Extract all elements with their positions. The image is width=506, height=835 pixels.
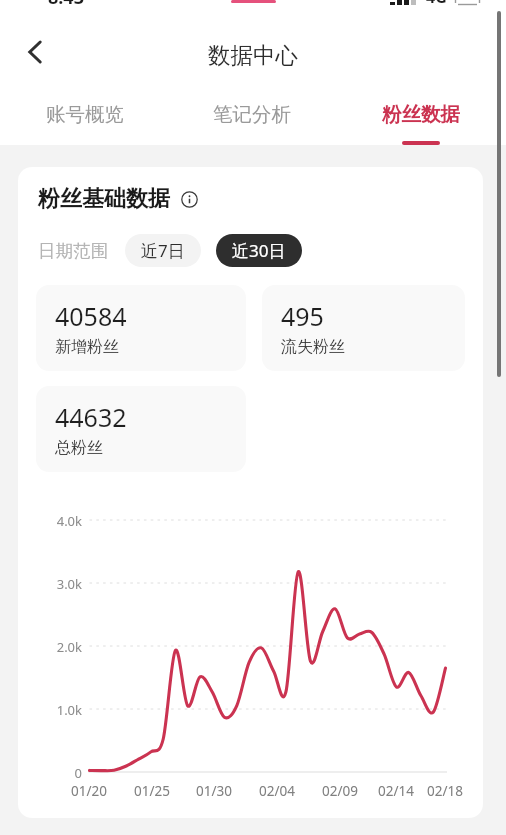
staticText: 02/18 bbox=[420, 782, 470, 800]
staticText: 笔记分析 bbox=[213, 102, 291, 127]
staticText: 4.0k bbox=[32, 512, 82, 530]
staticText: 账号概览 bbox=[46, 102, 124, 127]
staticText: 新增粉丝 bbox=[55, 337, 119, 357]
staticText: 01/20 bbox=[64, 782, 114, 800]
staticText: 粉丝基础数据 bbox=[38, 185, 170, 213]
staticText: 495 bbox=[281, 299, 324, 333]
staticText: 近7日 bbox=[141, 239, 185, 262]
staticText: 1.0k bbox=[32, 701, 82, 719]
staticText: 02/14 bbox=[371, 782, 421, 800]
staticText: 流失粉丝 bbox=[281, 337, 345, 357]
button[interactable]: 近7日 bbox=[125, 234, 201, 267]
staticText: 日期范围 bbox=[38, 240, 108, 262]
staticText: 02/04 bbox=[252, 782, 302, 800]
button[interactable]: 近30日 bbox=[216, 234, 302, 267]
staticText: 02/09 bbox=[315, 782, 365, 800]
staticText: 44632 bbox=[55, 400, 127, 434]
staticText: 8:43 bbox=[48, 0, 84, 10]
staticText: 总粉丝 bbox=[55, 438, 103, 458]
staticText: 01/25 bbox=[127, 782, 177, 800]
button[interactable]: 笔记分析 bbox=[192, 95, 312, 145]
button[interactable]: Info bbox=[181, 191, 198, 208]
staticText: 4G bbox=[426, 0, 447, 8]
button[interactable]: 40584 bbox=[36, 285, 246, 371]
staticText: 2.0k bbox=[32, 638, 82, 656]
staticText: 粉丝数据 bbox=[382, 102, 460, 127]
button[interactable]: Back bbox=[13, 30, 57, 74]
staticText: 40584 bbox=[55, 299, 127, 333]
staticText: 近30日 bbox=[232, 239, 286, 262]
button[interactable]: 账号概览 bbox=[25, 95, 145, 145]
staticText: 01/30 bbox=[189, 782, 239, 800]
button[interactable]: 44632 bbox=[36, 386, 246, 472]
button[interactable]: 粉丝数据 bbox=[361, 95, 481, 145]
staticText: 数据中心 bbox=[0, 41, 506, 69]
staticText: 3.0k bbox=[32, 575, 82, 593]
staticText: 0 bbox=[32, 764, 82, 782]
button[interactable]: 495 bbox=[262, 285, 465, 371]
